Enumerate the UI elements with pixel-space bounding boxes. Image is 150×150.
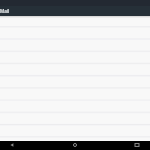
button[interactable]: Home bbox=[71, 141, 79, 148]
button[interactable]: Mail bbox=[0, 6, 150, 16]
button[interactable] bbox=[0, 135, 150, 141]
button[interactable]: Recent apps bbox=[133, 141, 141, 148]
button[interactable] bbox=[0, 123, 150, 135]
button[interactable] bbox=[0, 16, 150, 27]
staticText: Mail bbox=[0, 8, 10, 14]
button[interactable]: Back bbox=[8, 141, 16, 148]
button[interactable] bbox=[0, 75, 150, 87]
